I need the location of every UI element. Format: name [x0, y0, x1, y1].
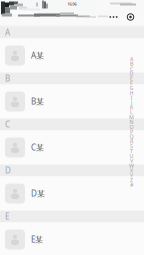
staticText: D某: [31, 188, 45, 199]
staticText: W: [129, 162, 134, 169]
staticText: C: [5, 119, 10, 130]
staticText: D: [129, 70, 133, 77]
staticText: Q: [129, 133, 133, 140]
staticText: L: [130, 109, 133, 116]
staticText: T: [130, 147, 133, 155]
staticText: B: [5, 73, 10, 84]
button[interactable]: A某: [0, 38, 144, 72]
staticText: F: [130, 80, 133, 87]
staticText: V: [130, 157, 133, 164]
staticText: X: [130, 167, 133, 174]
staticText: U: [129, 152, 133, 159]
staticText: I: [130, 94, 132, 101]
staticText: Z: [130, 177, 133, 184]
button[interactable]: Index: [127, 56, 136, 187]
button[interactable]: B某: [0, 84, 144, 118]
staticText: E某: [31, 234, 43, 245]
staticText: G: [129, 84, 133, 92]
staticText: A某: [31, 50, 44, 61]
staticText: M: [129, 114, 134, 121]
staticText: D: [5, 165, 11, 176]
button[interactable]: D某: [0, 176, 144, 210]
staticText: P: [130, 128, 133, 135]
button[interactable]: More: [107, 11, 120, 22]
staticText: C: [130, 65, 133, 72]
staticText: 16:06: [67, 1, 76, 7]
staticText: Y: [130, 172, 133, 179]
staticText: K: [130, 104, 133, 111]
button[interactable]: Camera: [124, 11, 137, 22]
staticText: B某: [31, 96, 44, 107]
staticText: A: [130, 55, 133, 62]
staticText: E: [130, 75, 133, 82]
staticText: S: [130, 143, 133, 150]
staticText: B: [130, 60, 133, 67]
staticText: N: [129, 118, 133, 125]
staticText: J: [131, 99, 132, 106]
staticText: A: [5, 27, 10, 38]
staticText: H: [129, 89, 133, 96]
staticText: #: [130, 181, 133, 189]
button[interactable]: E某: [0, 222, 144, 255]
staticText: E: [5, 211, 9, 222]
button[interactable]: C某: [0, 130, 144, 164]
staticText: C某: [31, 142, 44, 153]
staticText: O: [129, 123, 133, 130]
staticText: R: [130, 138, 133, 145]
